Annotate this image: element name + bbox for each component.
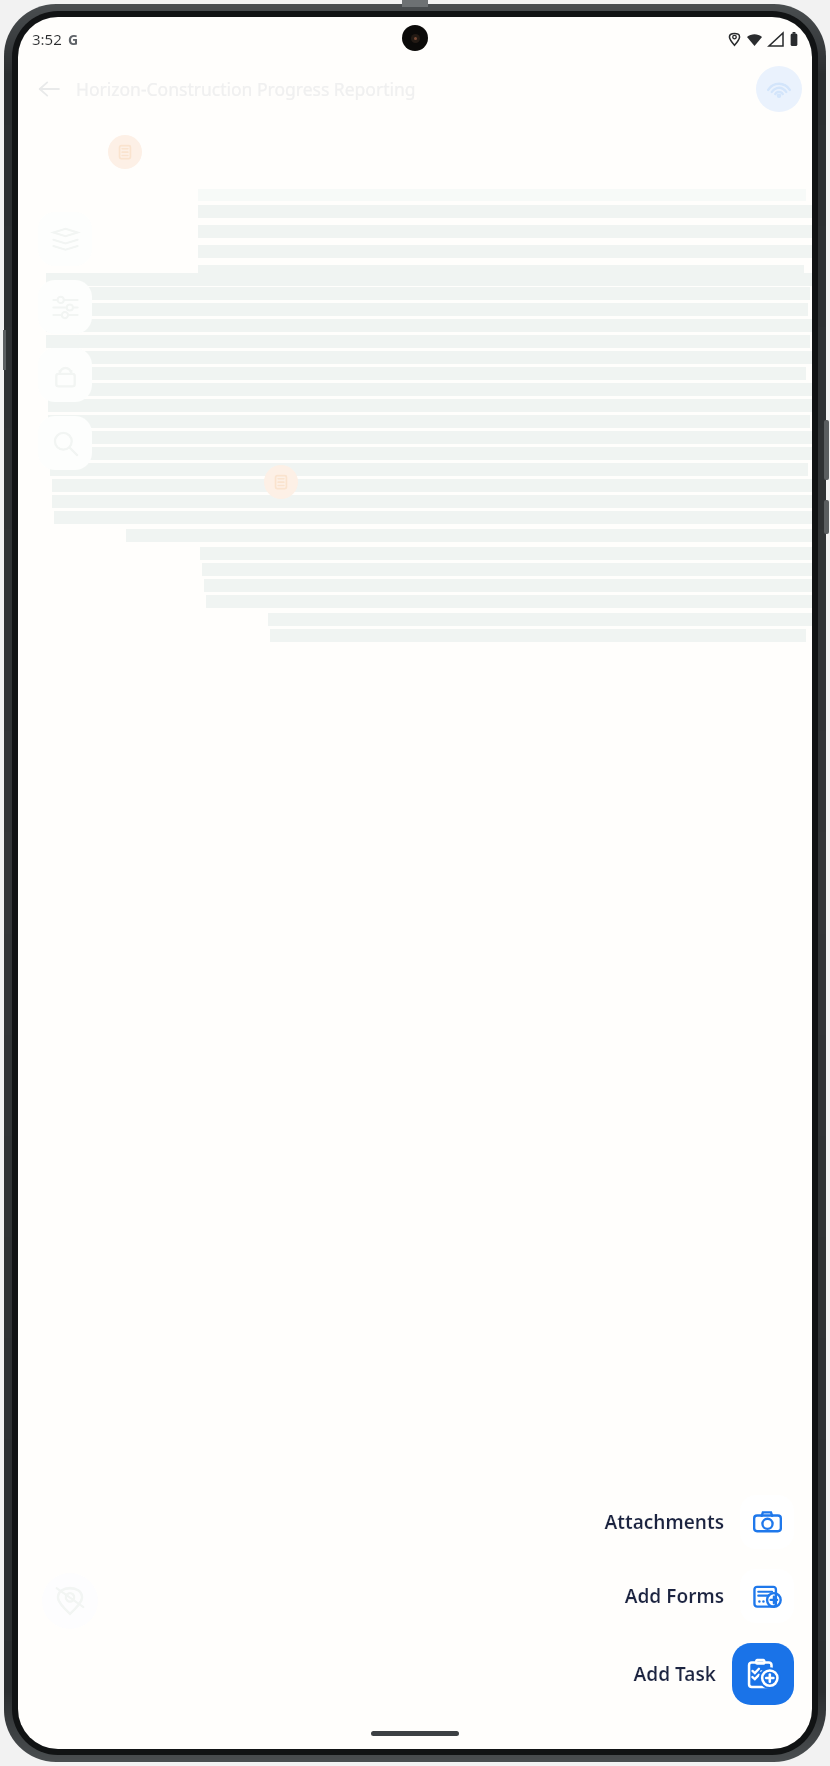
- staticText: Add Task: [633, 1661, 716, 1687]
- button[interactable]: Add Forms: [624, 1569, 794, 1623]
- other: Add Task: [732, 1643, 794, 1705]
- button[interactable]: Lock: [38, 348, 92, 402]
- button[interactable]: Filters: [38, 280, 92, 334]
- button[interactable]: Back: [28, 68, 70, 110]
- button[interactable]: Connection status: [756, 66, 802, 112]
- staticText: Horizon-Construction Progress Reporting: [76, 77, 416, 101]
- staticText: Attachments: [604, 1509, 724, 1535]
- other: Attachments: [740, 1495, 794, 1549]
- button[interactable]: Search: [38, 416, 92, 470]
- button[interactable]: Add Task: [633, 1643, 794, 1705]
- staticText: G: [68, 30, 79, 49]
- staticText: Add Forms: [624, 1583, 724, 1609]
- other: Add Forms: [740, 1569, 794, 1623]
- button[interactable]: Attachments: [604, 1495, 794, 1549]
- staticText: 3:52: [32, 29, 62, 49]
